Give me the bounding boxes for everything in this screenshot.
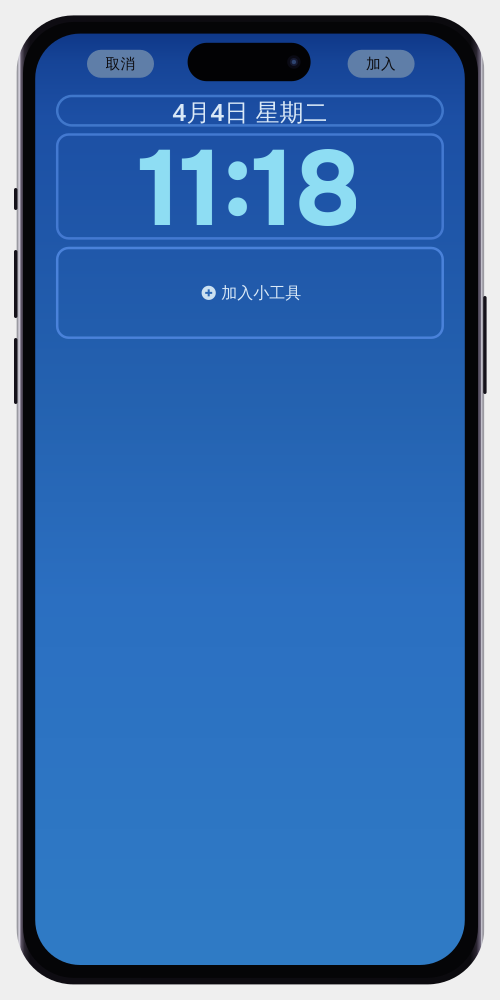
staticText: 11:18 [138, 121, 361, 257]
button[interactable]: 取消 [87, 50, 154, 78]
button[interactable]: 4月4日 星期二 [57, 95, 443, 127]
staticText: 取消 [105, 55, 135, 73]
staticText: 加入小工具 [221, 283, 301, 303]
staticText: 加入 [366, 55, 396, 73]
button[interactable]: 加入小工具 [57, 248, 443, 338]
button[interactable]: 加入 [348, 50, 415, 78]
staticText: 4月4日 星期二 [172, 96, 327, 128]
button[interactable]: 11:18 [57, 118, 443, 254]
